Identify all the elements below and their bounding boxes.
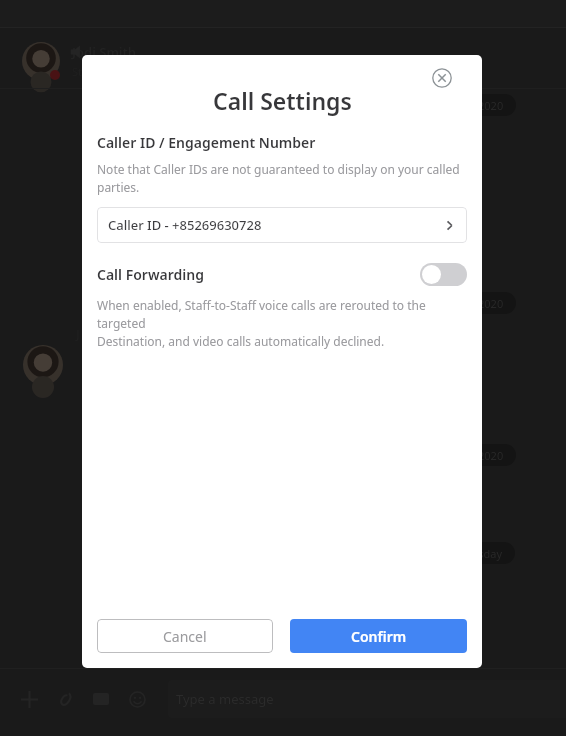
staticText: 2020: [478, 98, 504, 113]
staticText: Jodi Smith: [72, 43, 137, 61]
staticText: 2020: [478, 448, 504, 463]
staticText: Type a message: [176, 690, 274, 708]
staticText: Caller ID - +85269630728: [108, 216, 262, 234]
staticText: Call Forwarding: [97, 265, 204, 284]
staticText: Caller ID / Engagement Number: [97, 133, 316, 152]
button[interactable]: Confirm: [290, 619, 467, 653]
staticText: Call Settings: [213, 85, 352, 116]
staticText: Sta: [72, 64, 89, 79]
button[interactable]: Cancel: [97, 619, 273, 653]
button[interactable]: Call Forwarding: [97, 260, 467, 288]
button[interactable]: Close: [426, 62, 458, 94]
staticText: 2020: [478, 296, 504, 311]
staticText: Cancel: [163, 627, 207, 646]
staticText: Confirm: [351, 627, 407, 646]
staticText: When enabled, Staff-to-Staff voice calls…: [97, 297, 467, 350]
staticText: Note that Caller IDs are not guaranteed …: [97, 161, 460, 196]
button[interactable]: SMS: [84, 682, 118, 716]
staticText: esday: [472, 546, 503, 561]
button[interactable]: Caller ID - +85269630728: [97, 207, 467, 243]
